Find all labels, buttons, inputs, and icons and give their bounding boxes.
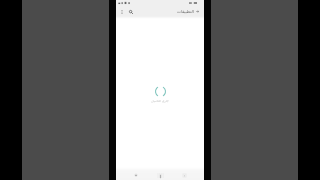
button[interactable]: Recents [180,171,188,179]
button[interactable]: Home [156,171,165,180]
staticText: التطبيقات [177,9,195,14]
button[interactable]: More options [119,7,125,16]
button[interactable]: Search [127,7,134,16]
staticText: جاري التحميل [151,99,169,103]
button[interactable]: Back [132,171,140,179]
button[interactable]: Back [195,7,200,16]
